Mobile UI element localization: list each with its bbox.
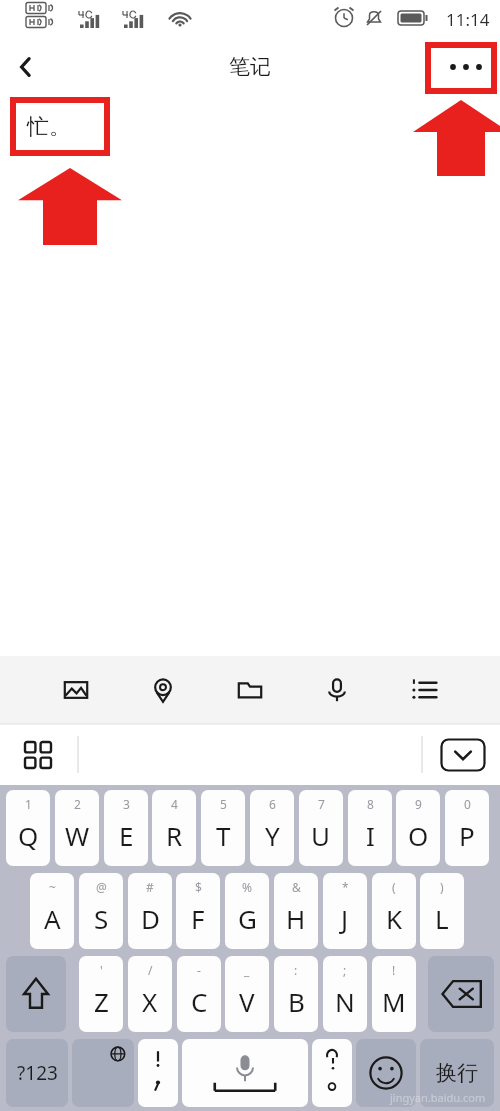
staticText: H (286, 901, 306, 936)
staticText: 1 (25, 796, 32, 812)
staticText: 8 (367, 796, 374, 812)
button[interactable]: 2 (55, 790, 99, 866)
staticText: T (216, 818, 231, 853)
staticText: ' (100, 962, 103, 978)
button[interactable]: 5 (201, 790, 245, 866)
button[interactable]: Backspace (428, 956, 494, 1032)
staticText: 6 (269, 796, 276, 812)
staticText: jingyan.baidu.com (390, 1090, 486, 1105)
button[interactable]: Attach file (228, 668, 272, 712)
staticText: ; (343, 962, 347, 978)
button[interactable]: 7 (299, 790, 343, 866)
staticText: A (44, 901, 61, 936)
button[interactable]: Comma (138, 1039, 178, 1107)
button[interactable]: Checklist (402, 668, 446, 712)
button[interactable]: Voice input (315, 668, 359, 712)
staticText: J (341, 901, 349, 936)
staticText: P (459, 818, 475, 853)
button[interactable]: _ (225, 956, 269, 1032)
button[interactable]: More options (432, 43, 500, 91)
staticText: N (335, 984, 355, 1019)
button[interactable]: Switch language (72, 1039, 134, 1107)
staticText: 4 (171, 796, 178, 812)
button[interactable]: 1 (6, 790, 50, 866)
staticText: D (141, 901, 160, 936)
staticText: Z (94, 984, 109, 1019)
staticText: L (435, 901, 449, 936)
button[interactable]: ( (372, 873, 416, 949)
button[interactable]: ~ (30, 873, 74, 949)
staticText: ) (440, 879, 444, 895)
staticText: / (148, 962, 153, 978)
staticText: E (119, 818, 134, 853)
staticText: M (382, 984, 406, 1019)
staticText: U (311, 818, 331, 853)
staticText: I (366, 818, 375, 853)
button[interactable]: @ (79, 873, 123, 949)
staticText: W (65, 818, 90, 853)
staticText: ?123 (17, 1060, 58, 1086)
staticText: G (238, 901, 257, 936)
button[interactable]: Space (182, 1039, 308, 1107)
staticText: B (288, 984, 305, 1019)
button[interactable]: ; (323, 956, 367, 1032)
staticText: ( (392, 879, 396, 895)
button[interactable]: Location (141, 668, 185, 712)
button[interactable]: 3 (104, 790, 148, 866)
button[interactable]: 4 (152, 790, 196, 866)
staticText: $ (195, 879, 202, 895)
staticText: Y (265, 818, 280, 853)
staticText: V (239, 984, 255, 1019)
button[interactable]: Insert image (54, 668, 98, 712)
staticText: X (142, 984, 158, 1019)
button[interactable]: % (225, 873, 269, 949)
staticText: 0 (464, 796, 471, 812)
staticText: ~ (49, 879, 56, 895)
staticText: 忙。 (27, 113, 71, 141)
staticText: 笔记 (229, 54, 271, 80)
staticText: 11:14 (446, 8, 490, 31)
staticText: 9 (415, 796, 422, 812)
button[interactable]: Emoji (356, 1039, 416, 1107)
staticText: 3 (123, 796, 130, 812)
button[interactable]: : (274, 956, 318, 1032)
button[interactable]: Symbols (16, 733, 60, 777)
button[interactable]: Hide keyboard (440, 738, 486, 772)
button[interactable]: $ (176, 873, 220, 949)
staticText: % (242, 879, 252, 895)
button[interactable]: / (128, 956, 172, 1032)
staticText: S (94, 901, 109, 936)
staticText: 5 (220, 796, 227, 812)
button[interactable]: Shift (6, 956, 66, 1032)
button[interactable]: Period (312, 1039, 352, 1107)
button[interactable]: 9 (396, 790, 440, 866)
staticText: C (191, 984, 208, 1019)
staticText: 2 (74, 796, 81, 812)
staticText: O (408, 818, 429, 853)
staticText: & (292, 879, 301, 895)
staticText: 7 (318, 796, 325, 812)
staticText: 换行 (436, 1060, 478, 1086)
staticText: # (146, 879, 154, 895)
button[interactable]: # (128, 873, 172, 949)
button[interactable]: ! (372, 956, 416, 1032)
button[interactable]: & (274, 873, 318, 949)
button[interactable]: 8 (348, 790, 392, 866)
staticText: Q (18, 818, 39, 853)
staticText: - (197, 962, 201, 978)
button[interactable]: ?123 (6, 1039, 68, 1107)
staticText: K (386, 901, 403, 936)
button[interactable]: 6 (250, 790, 294, 866)
staticText: R (166, 818, 183, 853)
button[interactable]: ' (79, 956, 123, 1032)
button[interactable]: Back (0, 41, 52, 93)
button[interactable]: 换行 (420, 1039, 494, 1107)
staticText: @ (96, 879, 107, 895)
staticText: : (294, 962, 298, 978)
button[interactable]: ) (420, 873, 464, 949)
button[interactable]: * (323, 873, 367, 949)
button[interactable]: - (177, 956, 221, 1032)
staticText: * (342, 879, 349, 895)
staticText: _ (244, 962, 250, 978)
button[interactable]: 0 (445, 790, 489, 866)
